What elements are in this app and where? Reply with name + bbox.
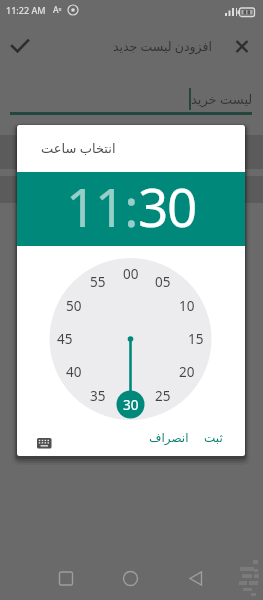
button[interactable]: 20 — [174, 363, 200, 381]
staticText: افزودن لیست جدید — [113, 38, 212, 55]
button[interactable] — [8, 34, 34, 60]
staticText: 05 — [155, 273, 171, 291]
staticText: 40 — [66, 363, 82, 381]
button[interactable]: 15 — [183, 330, 209, 348]
button[interactable]: انصراف — [143, 425, 195, 451]
button[interactable]: 25 — [150, 387, 176, 405]
staticText: لیست خرید — [191, 90, 253, 108]
button[interactable] — [37, 437, 52, 449]
staticText: 00 — [123, 265, 139, 283]
staticText: 30 — [138, 170, 197, 242]
button[interactable]: 30 — [118, 396, 144, 414]
staticText: Aˣ — [53, 4, 62, 16]
staticText: ثبت — [204, 431, 223, 445]
button[interactable]: 35 — [85, 387, 111, 405]
staticText: 15 — [188, 330, 204, 348]
button[interactable]: 55 — [85, 273, 111, 291]
button[interactable] — [230, 34, 256, 60]
button[interactable]: 40 — [61, 363, 87, 381]
staticText: 11:22 AM — [6, 4, 46, 16]
button[interactable]: ثبت — [195, 425, 231, 451]
staticText: 35 — [90, 387, 106, 405]
staticText: 45 — [57, 330, 73, 348]
staticText: انصراف — [149, 431, 189, 445]
button[interactable]: 00 — [118, 265, 144, 283]
staticText: 30 — [123, 396, 139, 414]
button[interactable]: 45 — [52, 330, 78, 348]
staticText: 55 — [90, 273, 106, 291]
staticText: انتخاب ساعت — [41, 139, 116, 157]
button[interactable]: 10 — [174, 297, 200, 315]
button[interactable]: 05 — [150, 273, 176, 291]
staticText: 10 — [179, 297, 195, 315]
staticText: 20 — [179, 363, 195, 381]
staticText: 25 — [155, 387, 171, 405]
staticText: 50 — [66, 297, 82, 315]
staticText: 11: — [66, 170, 138, 242]
button[interactable]: 50 — [61, 297, 87, 315]
